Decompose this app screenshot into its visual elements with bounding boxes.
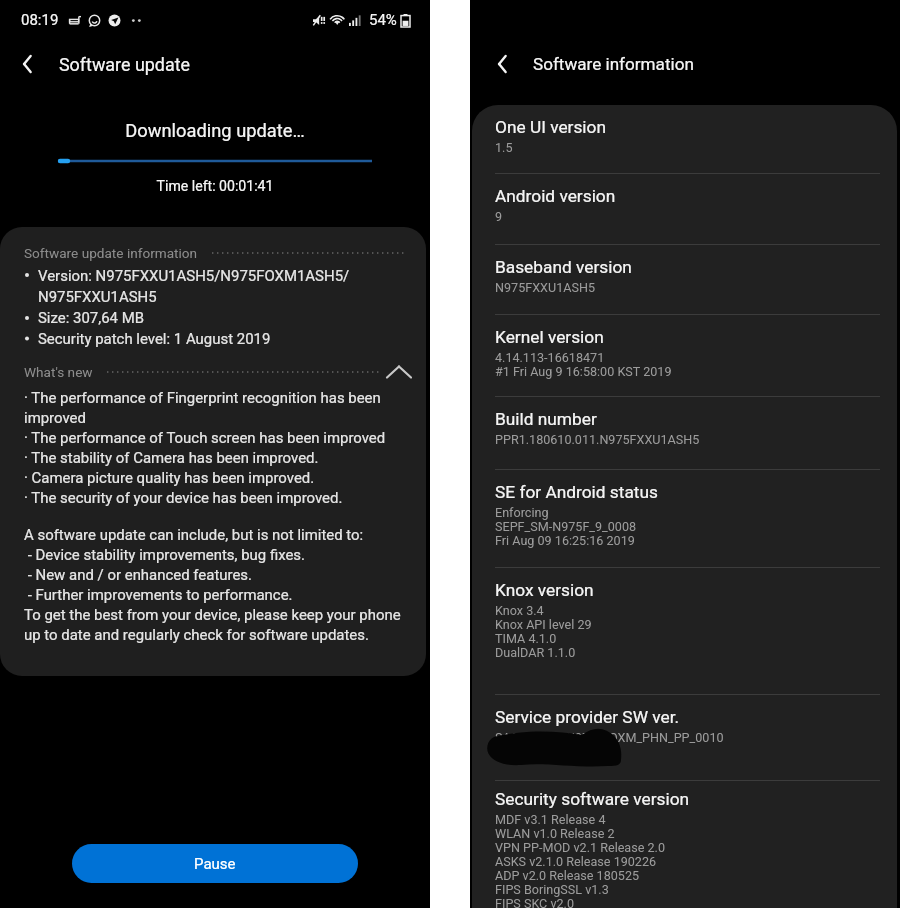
- button[interactable]: Service provider SW ver.: [472, 695, 897, 780]
- button[interactable]: Build number: [472, 397, 897, 469]
- staticText: Software update: [59, 54, 190, 75]
- button[interactable]: Knox version: [472, 568, 897, 694]
- staticText: Downloading update…: [0, 120, 430, 141]
- staticText: N975FXXU1ASH5: [495, 280, 595, 295]
- staticText: Baseband version: [495, 257, 632, 277]
- button[interactable]: One UI version: [472, 105, 897, 173]
- button[interactable]: Pause: [72, 844, 358, 883]
- staticText: PPR1.180610.011.N975FXXU1ASH5: [495, 432, 700, 447]
- staticText: MDF v3.1 Release 4 WLAN v1.0 Release 2 V…: [495, 812, 665, 908]
- staticText: Service provider SW ver.: [495, 707, 680, 727]
- staticText: Knox version: [495, 580, 594, 600]
- staticText: 4.14.113-16618471 #1 Fri Aug 9 16:58:00 …: [495, 350, 672, 379]
- staticText: Build number: [495, 409, 597, 429]
- staticText: Knox 3.4 Knox API level 29 TIMA 4.1.0 Du…: [495, 603, 592, 660]
- button[interactable]: Kernel version: [472, 315, 897, 396]
- staticText: A software update can include, but is no…: [24, 526, 419, 644]
- staticText: What's new: [24, 364, 93, 380]
- staticText: 1.5: [495, 140, 513, 155]
- staticText: Security software version: [495, 789, 690, 809]
- staticText: Android version: [495, 186, 616, 206]
- staticText: 9: [495, 209, 503, 224]
- staticText: Kernel version: [495, 327, 604, 347]
- button[interactable]: Collapse: [384, 357, 414, 387]
- button[interactable]: Back: [10, 47, 44, 81]
- staticText: · The performance of Fingerprint recogni…: [24, 389, 422, 507]
- staticText: Software update information: [24, 245, 198, 261]
- staticText: 08:19: [21, 11, 59, 29]
- staticText: Time left: 00:01:41: [0, 178, 430, 195]
- button[interactable]: Android version: [472, 174, 897, 244]
- staticText: One UI version: [495, 117, 606, 137]
- button[interactable]: SE for Android status: [472, 470, 897, 567]
- button[interactable]: Back: [485, 47, 519, 81]
- staticText: SE for Android status: [495, 482, 658, 502]
- staticText: Pause: [194, 855, 236, 873]
- staticText: Version: N975FXXU1ASH5/N975FOXM1ASH5/ N9…: [38, 267, 350, 347]
- staticText: Enforcing SEPF_SM-N975F_9_0008 Fri Aug 0…: [495, 505, 637, 548]
- button[interactable]: Security software version: [472, 781, 897, 908]
- staticText: SAOMC_SM-N975F_OXM_PHN_PP_0010 MDM 7.1.1…: [495, 730, 724, 759]
- button[interactable]: Baseband version: [472, 245, 897, 314]
- staticText: 54%: [369, 11, 397, 29]
- staticText: Software information: [533, 54, 694, 74]
